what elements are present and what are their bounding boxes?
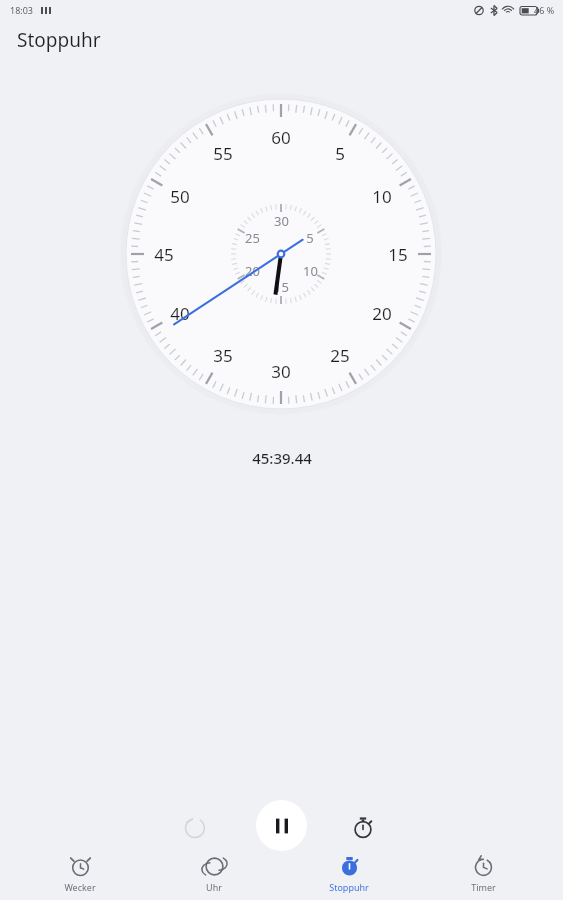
staticText: 15 [274,278,289,296]
staticText: 5 [335,142,345,165]
button[interactable]: Zurücksetzen [178,811,212,845]
staticText: 20 [372,302,392,325]
staticText: 35 [213,344,233,367]
staticText: 46 % [534,4,555,16]
staticText: 55 [213,142,233,165]
staticText: 15 [388,243,408,266]
button[interactable]: Wecker [25,848,135,900]
staticText: 5 [306,229,314,247]
staticText: 18:03 [10,4,34,16]
button[interactable]: Uhr [159,848,269,900]
staticText: 40 [170,302,190,325]
staticText: 30 [274,212,289,230]
staticText: 20 [245,262,260,280]
staticText: 60 [271,126,291,149]
staticText: Uhr [206,881,222,893]
staticText: Stoppuhr [329,881,369,893]
staticText: 10 [303,262,318,280]
button[interactable]: Timer [428,848,538,900]
staticText: 25 [330,344,350,367]
staticText: 30 [271,360,291,383]
staticText: Wecker [64,881,96,893]
staticText: 25 [245,229,260,247]
staticText: 45 [154,243,174,266]
button[interactable]: Pause [256,800,307,851]
button[interactable]: Runde [346,811,380,845]
staticText: Timer [471,881,496,893]
staticText: 50 [170,185,190,208]
staticText: 10 [372,185,392,208]
staticText: 45:39.44 [252,448,312,468]
staticText: Stoppuhr [17,27,101,53]
button[interactable]: Stoppuhr [294,848,404,900]
